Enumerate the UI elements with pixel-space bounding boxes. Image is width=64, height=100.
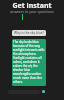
staticText: Why is the sky blue? xyxy=(14,31,44,35)
staticText: The sky looks blue because of the way su… xyxy=(13,40,45,84)
staticText: Get instant xyxy=(0,1,64,11)
staticText: answers to your questions xyxy=(0,9,64,14)
